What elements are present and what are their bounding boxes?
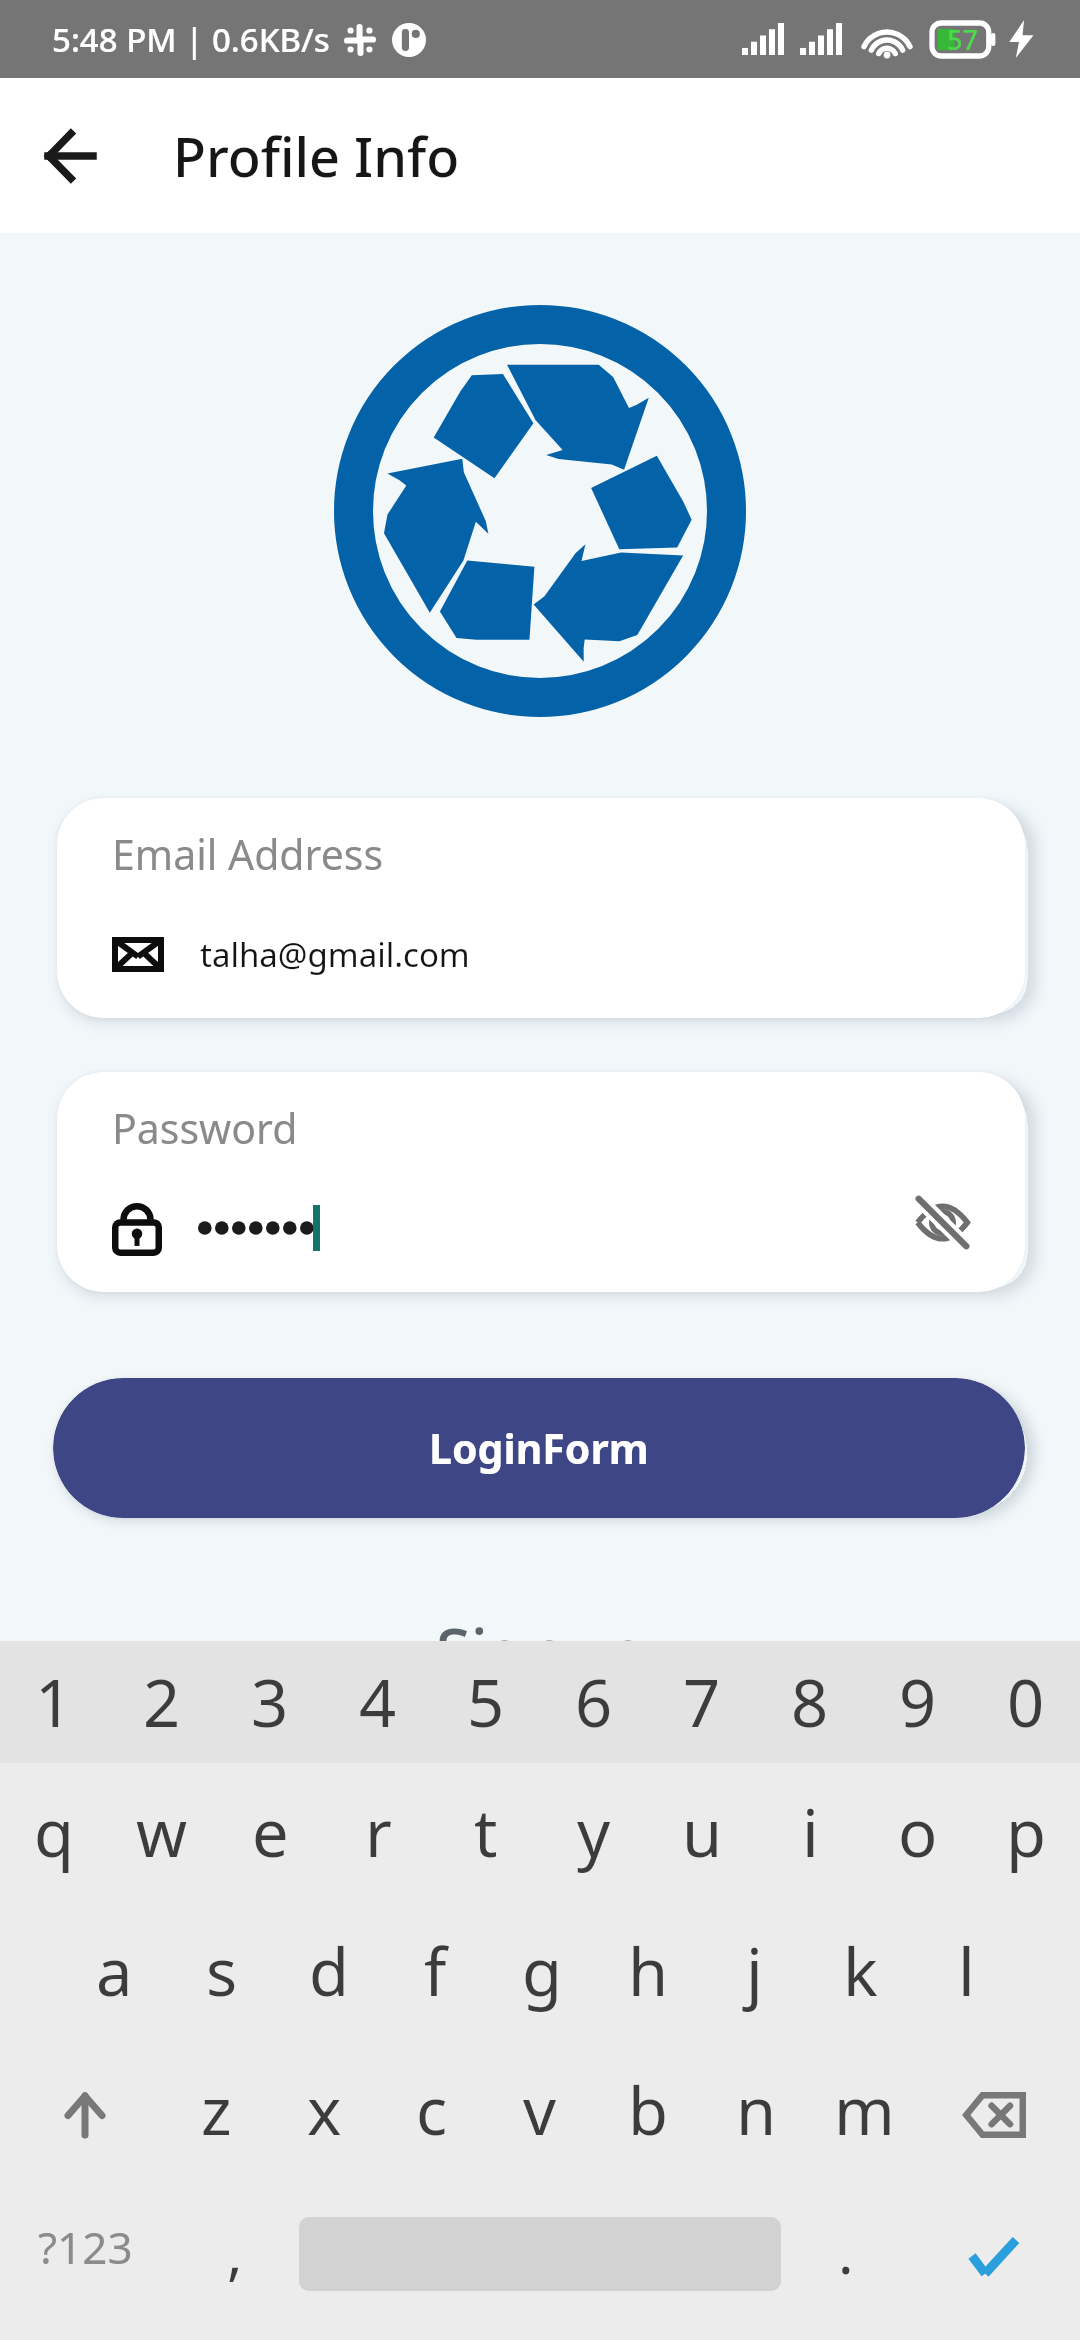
staticText: 7 [683,1658,721,1747]
staticText: . [838,2212,854,2291]
button[interactable]: h [595,1902,701,2041]
button[interactable]: 6 [540,1641,648,1763]
staticText: k [843,1927,878,2016]
staticText: y [577,1788,611,1877]
button[interactable]: j [701,1902,807,2041]
staticText: Email Address [112,826,384,882]
button[interactable]: LoginForm [53,1378,1025,1518]
button[interactable]: 5 [432,1641,540,1763]
button[interactable]: 9 [864,1641,972,1763]
staticText: p [1006,1788,1046,1877]
button[interactable]: p [972,1763,1080,1902]
button[interactable]: Password [57,1072,1025,1292]
staticText: e [252,1788,289,1877]
staticText: w [136,1788,188,1877]
staticText: f [424,1927,447,2016]
staticText: d [309,1927,349,2016]
staticText: z [201,2066,232,2155]
button[interactable]: . [781,2180,910,2319]
staticText: q [34,1788,74,1877]
button[interactable]: m [810,2041,918,2180]
button[interactable]: Shift [0,2041,162,2180]
button[interactable]: a [61,1902,168,2041]
button[interactable]: Backspace [918,2041,1080,2180]
staticText: s [206,1927,238,2016]
button[interactable]: t [432,1763,540,1902]
button[interactable]: 1 [0,1641,108,1763]
button[interactable]: Back [23,109,117,203]
staticText: Signup [436,1608,645,1694]
button[interactable]: n [702,2041,810,2180]
staticText: c [416,2066,448,2155]
button[interactable]: w [108,1763,216,1902]
button[interactable]: s [168,1902,275,2041]
staticText: b [628,2066,668,2155]
button[interactable]: Email Address [57,798,1025,1018]
button[interactable]: z [162,2041,270,2180]
staticText: 5:48 PM | 0.6KB/s [52,17,330,62]
button[interactable]: f [382,1902,489,2041]
button[interactable]: v [486,2041,594,2180]
button[interactable]: 7 [648,1641,756,1763]
staticText: ?123 [38,2217,133,2277]
button[interactable]: k [807,1902,913,2041]
staticText: 1 [35,1658,73,1747]
button[interactable]: 2 [108,1641,216,1763]
staticText: i [802,1788,819,1877]
staticText: 2 [143,1658,181,1747]
button[interactable]: 3 [216,1641,324,1763]
staticText: 6 [575,1658,613,1747]
button[interactable]: y [540,1763,648,1902]
staticText: , [227,2212,243,2291]
staticText: r [365,1788,392,1877]
staticText: n [736,2066,777,2155]
staticText: 0 [1007,1658,1045,1747]
staticText: t [474,1788,498,1877]
staticText: v [523,2066,557,2155]
button[interactable]: 4 [324,1641,432,1763]
staticText: u [682,1788,723,1877]
staticText: g [522,1927,562,2016]
button[interactable]: l [913,1902,1019,2041]
staticText: talha@gmail.com [200,932,470,977]
staticText: h [628,1927,669,2016]
staticText: m [834,2066,895,2155]
button[interactable]: d [275,1902,382,2041]
button[interactable]: 0 [972,1641,1080,1763]
staticText: LoginForm [429,1420,649,1476]
button[interactable]: e [216,1763,324,1902]
button[interactable]: g [489,1902,595,2041]
staticText: o [898,1788,938,1877]
button[interactable]: Enter [910,2180,1080,2319]
button[interactable]: o [864,1763,972,1902]
button[interactable]: r [324,1763,432,1902]
staticText: l [958,1927,975,2016]
button[interactable]: u [648,1763,756,1902]
staticText: j [746,1927,763,2016]
button[interactable]: q [0,1763,108,1902]
staticText: 5 [467,1658,505,1747]
staticText: 3 [251,1658,289,1747]
staticText: Profile Info [173,119,460,193]
staticText: 4 [359,1658,397,1747]
staticText: x [307,2066,342,2155]
staticText: 8 [791,1658,829,1747]
button[interactable]: b [594,2041,702,2180]
staticText: Password [112,1100,298,1156]
staticText: 57 [947,21,978,58]
staticText: a [96,1927,133,2016]
button[interactable]: ?123 [0,2180,170,2319]
button[interactable]: 8 [756,1641,864,1763]
staticText: 9 [899,1658,937,1747]
button[interactable]: , [170,2180,299,2319]
button[interactable]: i [756,1763,864,1902]
button[interactable]: c [378,2041,486,2180]
button[interactable]: x [270,2041,378,2180]
